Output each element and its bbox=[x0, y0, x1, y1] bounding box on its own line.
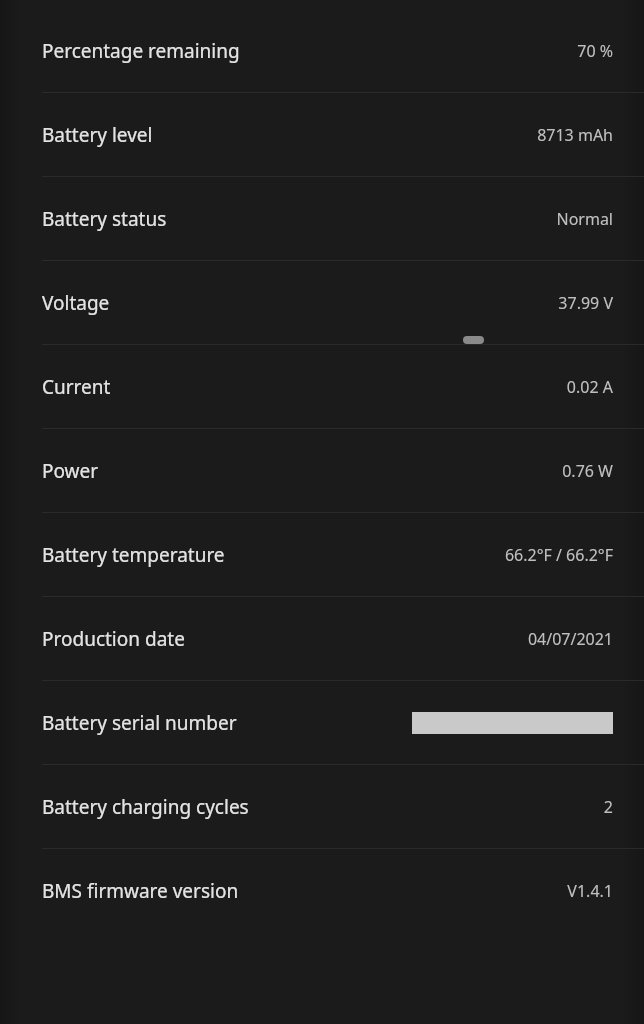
button[interactable]: Voltage bbox=[0, 261, 644, 344]
button[interactable]: Power bbox=[0, 429, 644, 512]
button[interactable]: BMS firmware version bbox=[0, 849, 644, 932]
staticText: 04/07/2021 bbox=[527, 628, 613, 650]
staticText: 2 bbox=[603, 796, 613, 818]
staticText: Normal bbox=[556, 208, 613, 230]
button[interactable]: Battery level bbox=[0, 93, 644, 176]
staticText: Percentage remaining bbox=[42, 38, 240, 64]
staticText: 37.99 V bbox=[558, 292, 613, 314]
button[interactable]: Production date bbox=[0, 597, 644, 680]
staticText: Battery serial number bbox=[42, 710, 237, 736]
staticText: Voltage bbox=[42, 290, 110, 316]
staticText: Power bbox=[42, 458, 99, 484]
staticText: 70 % bbox=[577, 40, 613, 62]
staticText: BMS firmware version bbox=[42, 878, 239, 904]
button[interactable]: Percentage remaining bbox=[0, 9, 644, 92]
staticText: Production date bbox=[42, 626, 185, 652]
staticText: Battery charging cycles bbox=[42, 794, 249, 820]
button[interactable]: Battery charging cycles bbox=[0, 765, 644, 848]
staticText: Current bbox=[42, 374, 111, 400]
staticText: V1.4.1 bbox=[567, 880, 613, 902]
staticText: 0.76 W bbox=[562, 460, 613, 482]
button[interactable]: Battery temperature bbox=[0, 513, 644, 596]
staticText: Battery status bbox=[42, 206, 167, 232]
button[interactable]: Battery serial number bbox=[0, 681, 644, 764]
staticText: 0.02 A bbox=[566, 376, 613, 398]
button[interactable]: Current bbox=[0, 345, 644, 428]
staticText: Battery level bbox=[42, 122, 153, 148]
staticText: Battery temperature bbox=[42, 542, 225, 568]
button[interactable]: Battery status bbox=[0, 177, 644, 260]
staticText: 8713 mAh bbox=[537, 124, 613, 146]
staticText: 66.2°F / 66.2°F bbox=[504, 544, 613, 566]
